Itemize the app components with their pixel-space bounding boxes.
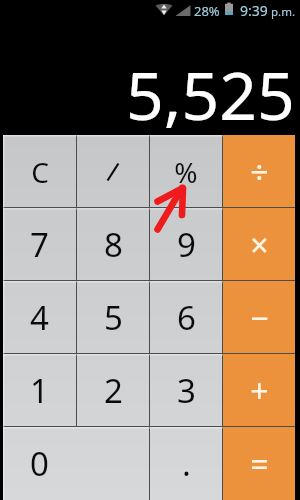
button[interactable]: 5 [77, 281, 149, 354]
staticText: 9:39 [240, 1, 268, 19]
button[interactable]: 2 [77, 354, 149, 427]
button[interactable]: 1 [3, 354, 76, 427]
staticText: × [250, 223, 269, 267]
staticText: ÷ [250, 150, 269, 194]
button[interactable]: 0 [3, 427, 148, 500]
staticText: 2 [104, 368, 123, 413]
staticText: 6 [177, 295, 196, 340]
button[interactable]: Minus [223, 281, 295, 354]
staticText: % [174, 153, 198, 191]
staticText: 3 [177, 368, 196, 413]
button[interactable]: C [3, 135, 76, 208]
staticText: 9 [177, 222, 196, 267]
staticText: . [182, 441, 191, 486]
staticText: = [250, 442, 269, 486]
staticText: 1 [30, 368, 49, 413]
button[interactable]: Multiply [223, 208, 295, 281]
staticText: p.m. [271, 4, 295, 20]
button[interactable]: Divide [223, 135, 295, 208]
button[interactable]: 9 [150, 208, 222, 281]
staticText: 5,525 [126, 49, 295, 139]
button[interactable]: 8 [77, 208, 149, 281]
staticText: 28% [194, 2, 220, 20]
button[interactable]: Divide [77, 135, 149, 208]
button[interactable]: Plus [223, 354, 295, 427]
button[interactable]: 3 [150, 354, 222, 427]
staticText: 8 [104, 222, 123, 267]
staticText: 4 [30, 295, 49, 340]
staticText: + [250, 369, 269, 413]
button[interactable]: . [150, 427, 222, 500]
button[interactable]: 6 [150, 281, 222, 354]
button[interactable]: Equals [223, 427, 295, 500]
staticText: 5 [104, 295, 123, 340]
staticText: C [31, 153, 49, 191]
staticText: 7 [30, 222, 49, 267]
staticText: − [250, 296, 269, 340]
staticText: 0 [30, 441, 49, 486]
button[interactable]: 4 [3, 281, 76, 354]
button[interactable]: % [150, 135, 222, 208]
button[interactable]: 7 [3, 208, 76, 281]
